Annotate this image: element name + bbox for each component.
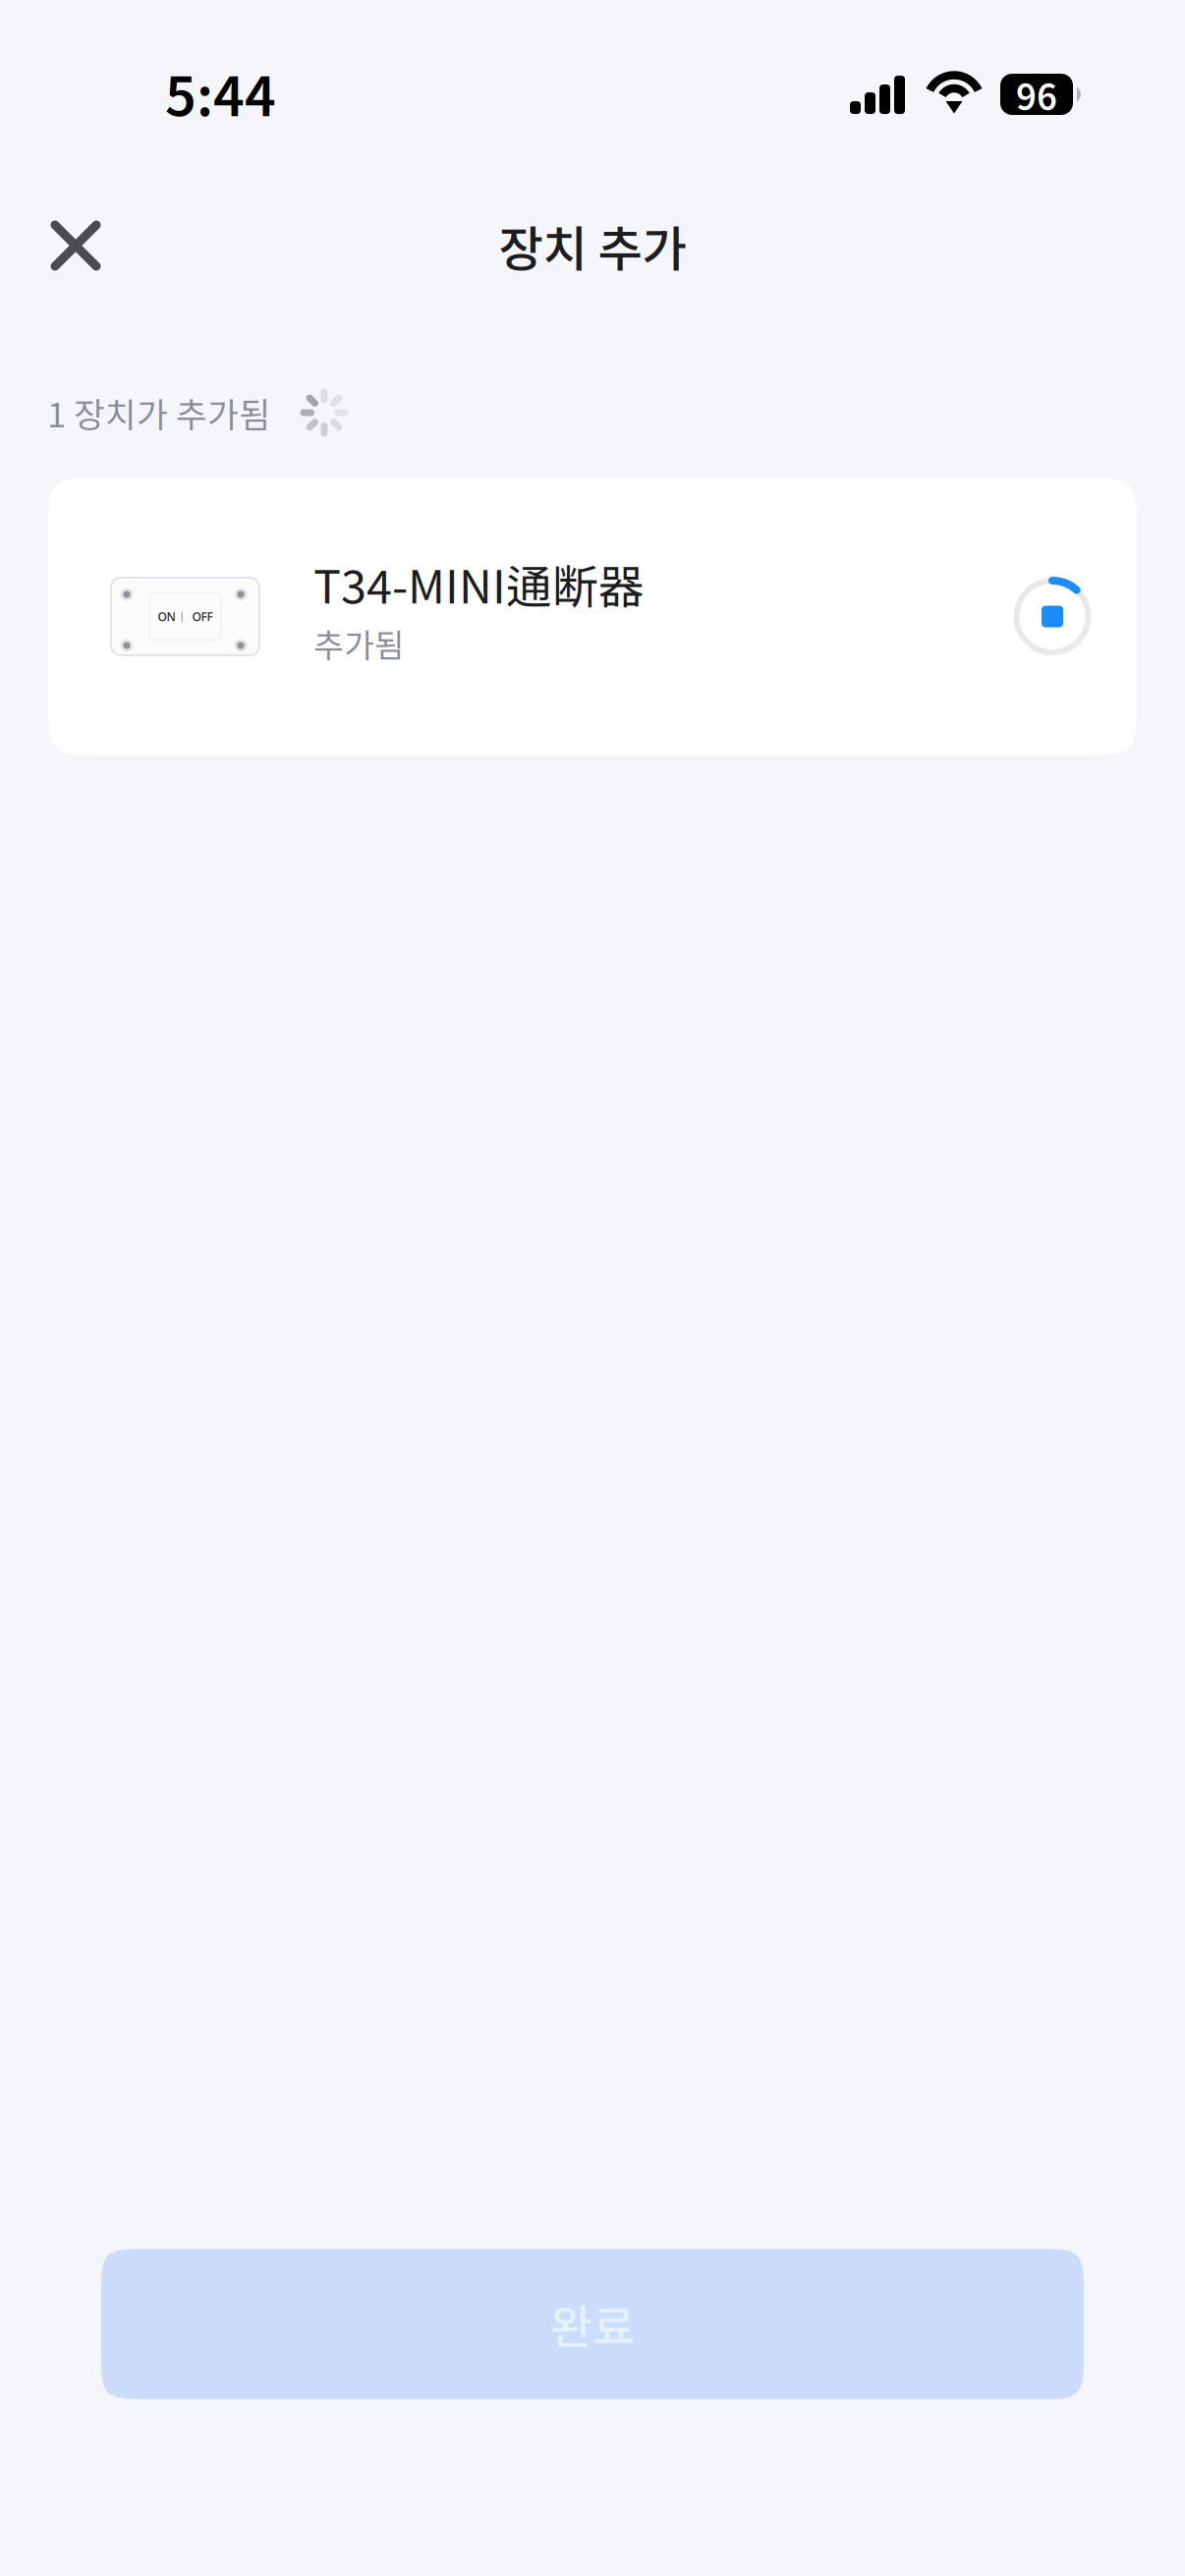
staticText: 완료	[550, 2291, 635, 2357]
staticText: 추가됨	[313, 620, 405, 667]
staticText: 장치 추가	[499, 211, 686, 281]
button[interactable]: 완료	[101, 2249, 1084, 2399]
button[interactable]: ON ᛁ OFF	[48, 477, 1137, 756]
staticText: 5:44	[165, 53, 276, 131]
staticText: T34-MINI通断器	[313, 550, 645, 617]
staticText: 96	[1016, 69, 1057, 120]
staticText: ON ᛁ OFF	[158, 609, 213, 624]
staticText: 1 장치가 추가됨	[47, 388, 270, 437]
button[interactable]: Close	[26, 196, 126, 296]
